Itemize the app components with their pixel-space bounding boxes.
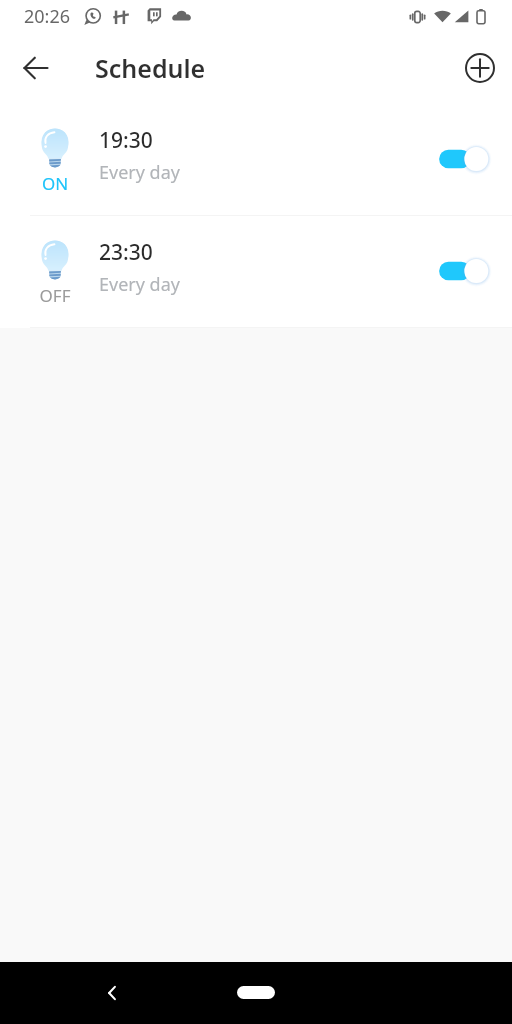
button[interactable]: Toggle schedule [436,143,492,175]
staticText: 23:30 [99,238,153,267]
button[interactable]: Back [12,44,60,92]
button[interactable]: Home [221,978,291,1008]
staticText: 20:26 [24,4,71,29]
staticText: 19:30 [99,126,153,155]
staticText: Every day [99,272,180,297]
button[interactable]: Back [92,973,132,1013]
button[interactable]: Toggle schedule [436,255,492,287]
staticText: Schedule [95,51,206,85]
button[interactable]: Add schedule [456,44,504,92]
staticText: Every day [99,160,180,185]
button[interactable]: ON [0,106,512,212]
button[interactable]: OFF [0,218,512,324]
staticText: OFF [30,284,80,307]
staticText: ON [30,172,80,195]
